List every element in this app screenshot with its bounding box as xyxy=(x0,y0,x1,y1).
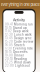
staticText: 12:30 xyxy=(5,33,13,36)
staticText: 19:00 xyxy=(5,54,13,57)
staticText: Stretch xyxy=(14,43,25,47)
staticText: 20:10 xyxy=(5,57,13,61)
staticText: Activity xyxy=(13,18,25,22)
staticText: Design sync xyxy=(14,36,32,40)
staticText: 18:15 xyxy=(5,50,12,54)
staticText: Deep work xyxy=(13,30,29,33)
staticText: Wind down xyxy=(14,61,31,64)
staticText: Lunch walk xyxy=(14,33,32,36)
staticText: Lights out xyxy=(15,64,30,67)
staticText: 10:15 xyxy=(5,26,12,30)
staticText: 09:41 xyxy=(5,23,13,26)
staticText: 16:05 xyxy=(5,43,13,47)
staticText: Dinner xyxy=(14,54,24,57)
staticText: Stand up xyxy=(13,26,27,30)
staticText: Code review xyxy=(14,40,33,43)
staticText: 21:25 xyxy=(5,61,13,64)
staticText: 22:00 xyxy=(5,64,14,67)
staticText: Everything in one place xyxy=(0,2,39,7)
staticText: Reading xyxy=(14,57,27,61)
staticText: Evening ride xyxy=(13,47,33,50)
staticText: Morning run xyxy=(14,23,33,26)
staticText: 13:45 xyxy=(5,36,13,40)
staticText: 15:20 xyxy=(5,40,13,43)
staticText: 11:02 xyxy=(5,30,12,33)
staticText: 17:30 xyxy=(5,47,12,50)
staticText: Groceries xyxy=(13,50,27,54)
